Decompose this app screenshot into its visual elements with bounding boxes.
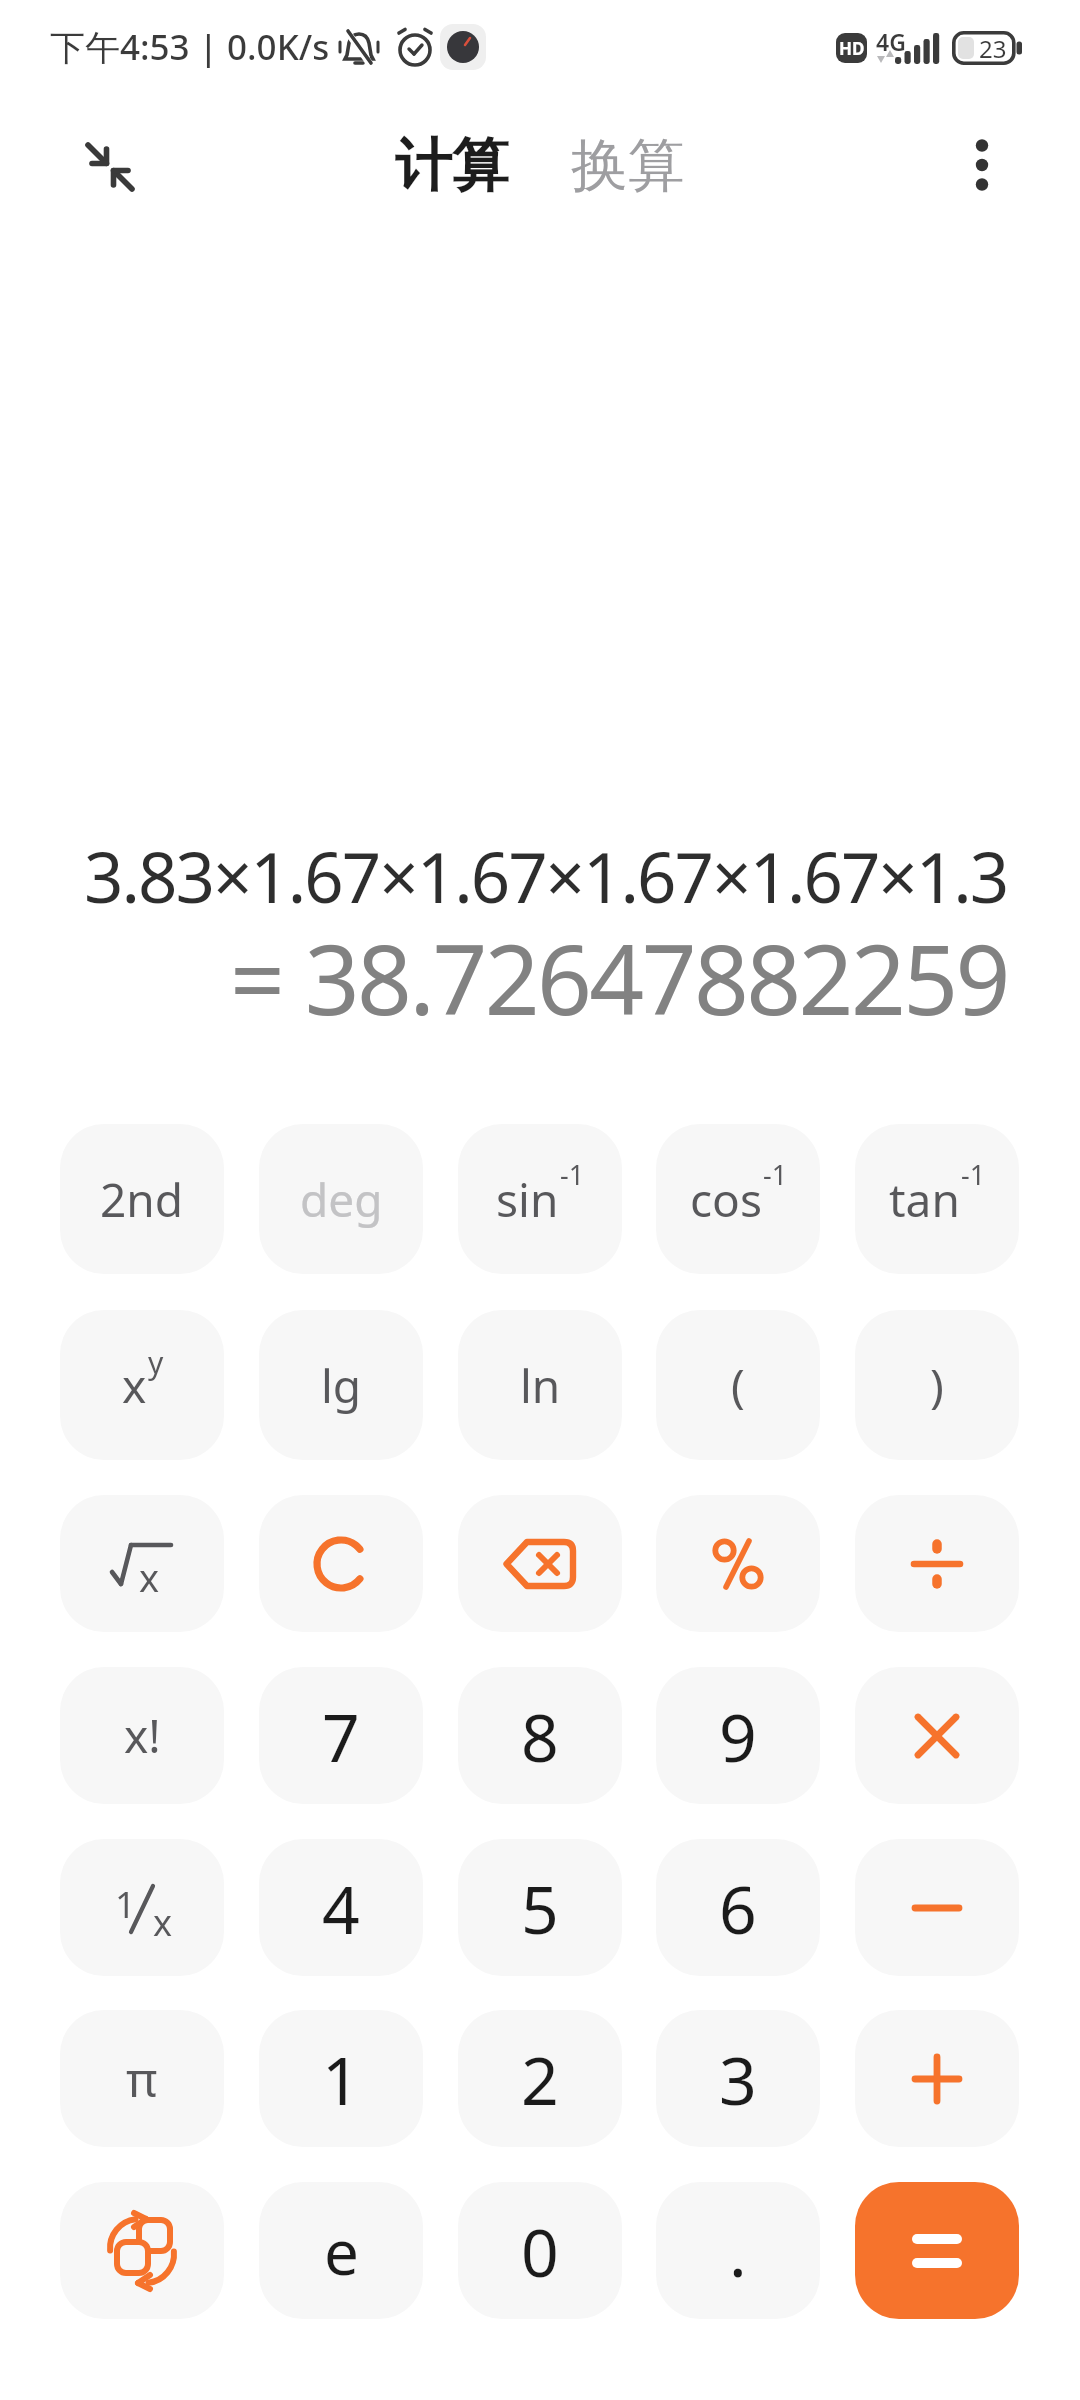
button[interactable]: 4 [259,1839,423,1976]
button[interactable]: . [656,2182,820,2319]
button[interactable] [855,2010,1019,2147]
button[interactable] [950,133,1014,197]
staticText: 3.83×1.67×1.67×1.67×1.67×1.3 [84,829,1008,911]
button[interactable]: 8 [458,1667,622,1804]
staticText: 4 [322,1863,360,1953]
button[interactable] [855,1839,1019,1976]
button[interactable]: ln [458,1310,622,1460]
button[interactable]: 9 [656,1667,820,1804]
button[interactable]: e [259,2182,423,2319]
staticText: 4G [876,26,906,57]
staticText: . [729,2206,747,2296]
staticText: cos [690,1168,762,1231]
staticText: x [153,1898,173,1947]
staticText: -1 [763,1156,788,1193]
button[interactable]: 1 [259,2010,423,2147]
staticText: ( [731,1354,745,1417]
button[interactable] [855,1667,1019,1804]
staticText: 换算 [571,130,685,202]
staticText: 0 [521,2206,559,2296]
button[interactable]: cos [656,1124,820,1274]
button[interactable]: x [60,1310,224,1460]
button[interactable]: x! [60,1667,224,1804]
staticText: x [139,1551,160,1603]
staticText: 5 [521,1863,559,1953]
button[interactable] [259,1495,423,1632]
staticText: ln [520,1354,561,1417]
button[interactable]: 1 [60,1839,224,1976]
button[interactable]: 7 [259,1667,423,1804]
button[interactable]: 0 [458,2182,622,2319]
button[interactable]: π [60,2010,224,2147]
staticText: lg [321,1354,362,1417]
button[interactable] [855,2182,1019,2319]
staticText: x [122,1354,147,1417]
button[interactable]: 5 [458,1839,622,1976]
button[interactable]: sin [458,1124,622,1274]
button[interactable] [855,1495,1019,1632]
button[interactable]: lg [259,1310,423,1460]
button[interactable]: 3 [656,2010,820,2147]
staticText: π [126,2046,158,2111]
button[interactable]: ( [656,1310,820,1460]
staticText: x! [124,1704,161,1767]
button[interactable]: 6 [656,1839,820,1976]
staticText: -1 [961,1156,986,1193]
staticText: HD [839,37,865,60]
button[interactable]: 2nd [60,1124,224,1274]
staticText: -1 [560,1156,585,1193]
button[interactable]: deg [259,1124,423,1274]
button[interactable]: 2 [458,2010,622,2147]
staticText: 2nd [100,1168,184,1231]
staticText: 1 [322,2034,360,2124]
button[interactable] [458,1495,622,1632]
staticText: 7 [322,1691,360,1781]
button[interactable] [656,1495,820,1632]
staticText: y [148,1342,164,1383]
staticText: 1 [115,1880,136,1929]
button[interactable]: x [60,1495,224,1632]
staticText: = 38.72647882259 [230,912,1008,1020]
staticText: 2 [521,2034,559,2124]
button[interactable]: 计算 [395,130,509,202]
button[interactable] [76,133,144,201]
staticText: 下午4:53 | 0.0K/s [50,23,330,71]
button[interactable]: ) [855,1310,1019,1460]
staticText: 23 [979,32,1007,64]
staticText: deg [300,1168,383,1231]
staticText: 8 [521,1691,559,1781]
staticText: tan [889,1168,960,1231]
staticText: sin [496,1168,559,1231]
staticText: 6 [719,1863,757,1953]
staticText: ) [930,1354,944,1417]
staticText: 9 [719,1691,757,1781]
button[interactable] [60,2182,224,2319]
button[interactable]: tan [855,1124,1019,1274]
staticText: e [324,2209,359,2293]
staticText: 计算 [395,130,509,202]
button[interactable]: 换算 [571,130,685,202]
staticText: 3 [719,2034,757,2124]
